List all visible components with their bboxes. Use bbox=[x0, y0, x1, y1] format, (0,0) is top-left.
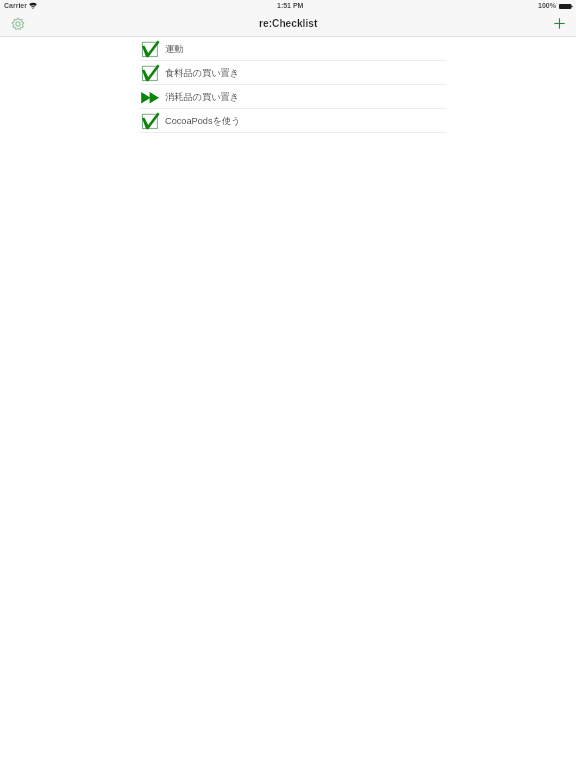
button[interactable]: 運動 bbox=[0, 37, 576, 61]
button[interactable]: Settings bbox=[7, 13, 29, 35]
staticText: 食料品の買い置き bbox=[165, 67, 240, 79]
staticText: Carrier bbox=[4, 2, 27, 10]
button[interactable]: 食料品の買い置き bbox=[0, 61, 576, 85]
staticText: re:Checklist bbox=[259, 18, 318, 29]
staticText: 1:51 PM bbox=[277, 2, 304, 10]
staticText: 消耗品の買い置き bbox=[165, 91, 240, 103]
button[interactable]: 消耗品の買い置き bbox=[0, 85, 576, 109]
staticText: CocoaPodsを使う bbox=[165, 115, 241, 127]
button[interactable]: Add item bbox=[548, 12, 570, 34]
button[interactable]: CocoaPodsを使う bbox=[0, 109, 576, 133]
staticText: 運動 bbox=[165, 43, 184, 55]
staticText: 100% bbox=[538, 2, 556, 10]
